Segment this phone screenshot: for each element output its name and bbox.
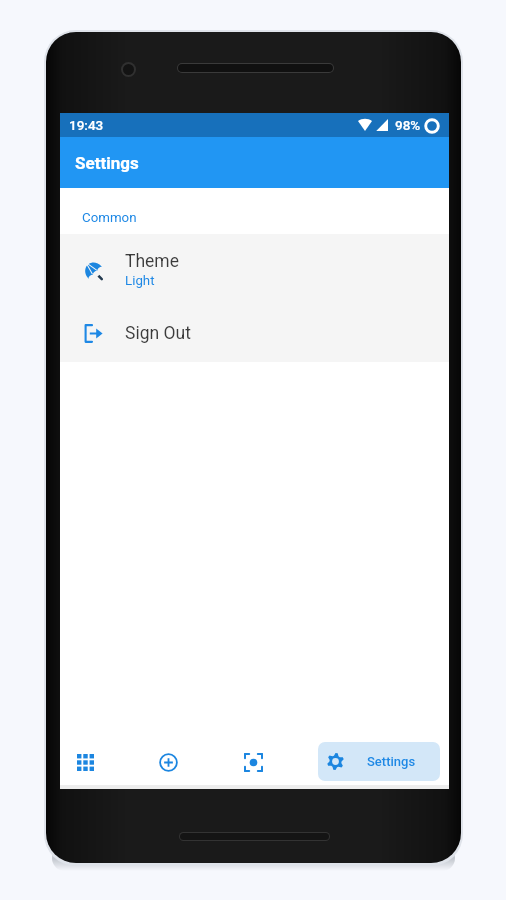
button[interactable]: Theme (60, 234, 449, 305)
staticText: Settings (75, 153, 139, 173)
staticText: Common (82, 210, 137, 226)
staticText: Settings (367, 754, 416, 769)
staticText: 98% (395, 117, 421, 133)
staticText: Theme (125, 251, 179, 272)
button[interactable]: Settings (318, 742, 440, 781)
staticText: 19:43 (69, 117, 104, 133)
staticText: Sign Out (125, 323, 191, 344)
button[interactable]: Apps (64, 741, 107, 784)
button[interactable]: Sign Out (60, 305, 449, 362)
button[interactable]: Add (147, 741, 190, 784)
staticText: Light (125, 273, 155, 289)
button[interactable]: Scan (232, 741, 275, 784)
